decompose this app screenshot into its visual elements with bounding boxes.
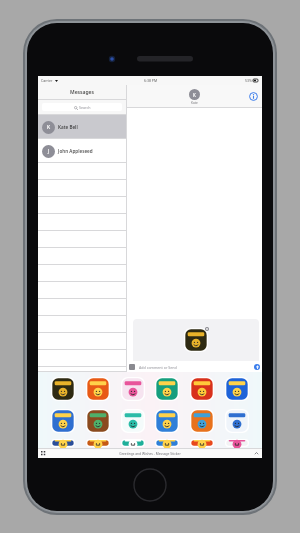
button[interactable]: J [38,139,126,163]
button[interactable]: Sticker 2 [85,376,111,402]
staticText: K [193,92,196,98]
button[interactable]: Sticker 16 [154,438,180,448]
button[interactable]: Sticker 17 [189,438,215,448]
button[interactable]: Sticker 15 [120,438,146,448]
button[interactable]: Sticker 7 [50,408,76,434]
staticText: Carrier [41,78,53,83]
staticText: Greetings and Wishes - Message Sticker [119,451,181,455]
button[interactable]: Sticker 3 [120,376,146,402]
button[interactable]: K [38,115,126,139]
button[interactable]: Add comment or Send [137,363,252,371]
button[interactable]: Details [249,92,258,101]
button[interactable]: Sticker 18 [224,438,250,448]
staticText: Messages [70,89,94,96]
button[interactable]: Sticker 11 [189,408,215,434]
button[interactable]: Expand [254,451,259,456]
button[interactable]: Kate Bell [189,89,200,100]
button[interactable]: Send [254,364,260,370]
staticText: 53% [245,78,252,83]
staticText: Kate [191,101,198,105]
button[interactable]: Sticker 5 [189,376,215,402]
button[interactable]: Sticker 6 [224,376,250,402]
button[interactable]: Sticker 9 [120,408,146,434]
button[interactable]: Sticker packs [41,451,46,456]
staticText: Kate Bell [58,124,78,130]
button[interactable]: Sticker 10 [154,408,180,434]
button[interactable]: Sticker 4 [154,376,180,402]
staticText: 6:38 PM [144,78,158,83]
staticText: John Appleseed [58,148,93,154]
button[interactable]: Search [42,103,122,111]
staticText: K [47,124,51,131]
staticText: J [48,148,50,155]
button[interactable]: Sticker 8 [85,408,111,434]
button[interactable]: Camera [129,364,135,370]
button[interactable]: Sticker 14 [85,438,111,448]
button[interactable]: Sticker 12 [224,408,250,434]
staticText: Search [79,105,91,110]
button[interactable]: Sticker 1 [50,376,76,402]
button[interactable]: Sticker 13 [50,438,76,448]
staticText: Add comment or Send [139,365,177,370]
